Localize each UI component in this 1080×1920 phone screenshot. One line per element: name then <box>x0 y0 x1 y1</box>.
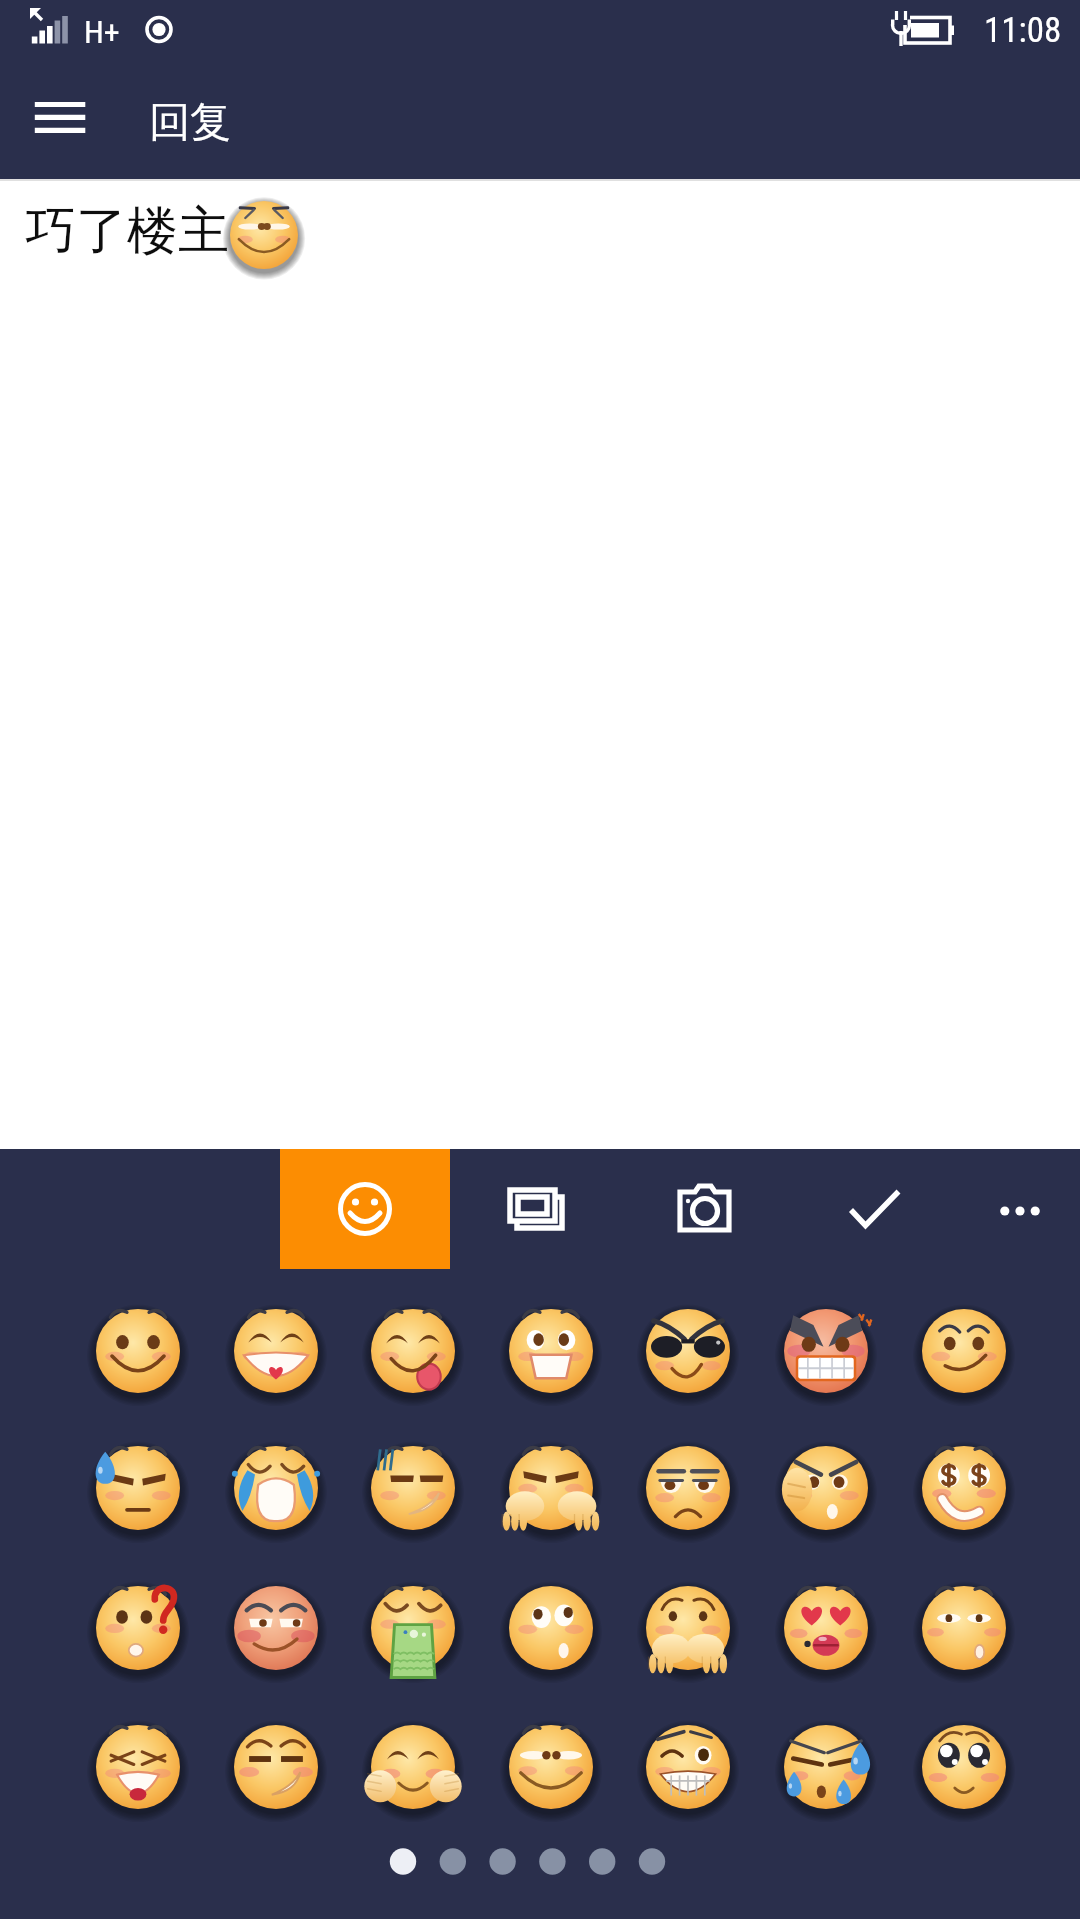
button[interactable]: Camera <box>620 1149 790 1269</box>
button[interactable]: More <box>960 1149 1080 1269</box>
button[interactable]: Emoji <box>280 1149 450 1269</box>
button[interactable]: Send <box>790 1149 960 1269</box>
staticText: 回复 <box>149 97 231 149</box>
button[interactable]: Gallery <box>450 1149 620 1269</box>
staticText: 巧了楼主 <box>25 199 229 263</box>
staticText: 11:08 <box>984 10 1062 51</box>
staticText: H+ <box>84 13 120 51</box>
button[interactable]: Menu <box>18 88 88 158</box>
